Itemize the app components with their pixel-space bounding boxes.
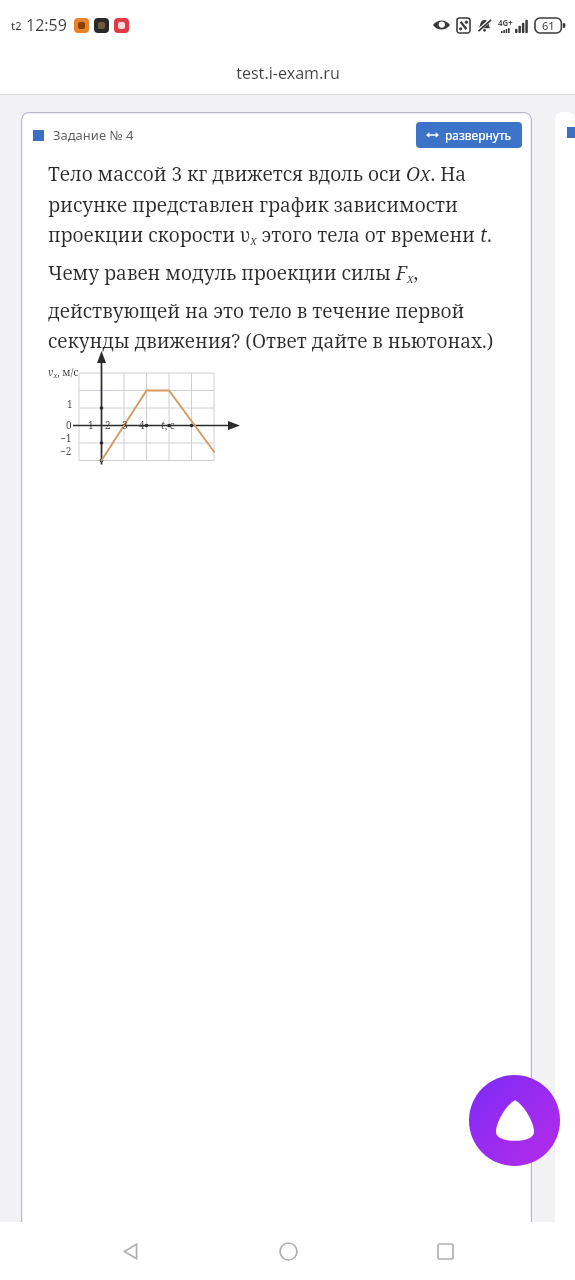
- button[interactable]: развернуть: [416, 122, 522, 148]
- button[interactable]: Back: [102, 1223, 158, 1279]
- staticText: 1: [67, 397, 73, 411]
- staticText: vx, м/с: [48, 365, 79, 380]
- button[interactable]: [555, 112, 575, 1222]
- staticText: 0: [66, 418, 72, 432]
- staticText: развернуть: [445, 127, 512, 143]
- button[interactable]: Recents: [417, 1223, 473, 1279]
- staticText: 4: [139, 418, 145, 432]
- staticText: t, с: [161, 418, 175, 432]
- staticText: 12:59: [26, 14, 67, 36]
- staticText: Тело массой 3 кг движется вдоль оси Ox. …: [48, 161, 522, 353]
- staticText: 2: [105, 418, 111, 432]
- button[interactable]: Home: [260, 1223, 316, 1279]
- staticText: −1: [60, 431, 72, 445]
- staticText: t2: [11, 18, 22, 33]
- staticText: 3: [122, 418, 128, 432]
- staticText: −2: [60, 444, 72, 458]
- staticText: 1: [88, 418, 94, 432]
- button[interactable]: Алиса: [469, 1075, 560, 1166]
- staticText: test.i-exam.ru: [236, 62, 340, 84]
- staticText: 61: [542, 18, 555, 33]
- staticText: 4G+: [498, 17, 513, 28]
- staticText: Задание № 4: [53, 126, 134, 144]
